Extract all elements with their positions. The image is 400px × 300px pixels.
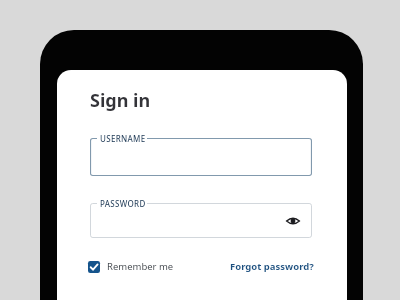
staticText: Forgot password?: [230, 260, 314, 273]
button[interactable]: Remember me: [88, 258, 174, 275]
staticText: Sign in: [90, 88, 151, 113]
button[interactable]: USERNAME: [90, 138, 312, 176]
staticText: PASSWORD: [100, 198, 146, 209]
button[interactable]: Forgot password?: [230, 258, 314, 275]
button[interactable]: Show password: [284, 212, 302, 230]
staticText: USERNAME: [100, 133, 146, 144]
button[interactable]: PASSWORD: [90, 203, 312, 238]
staticText: Remember me: [107, 260, 174, 273]
